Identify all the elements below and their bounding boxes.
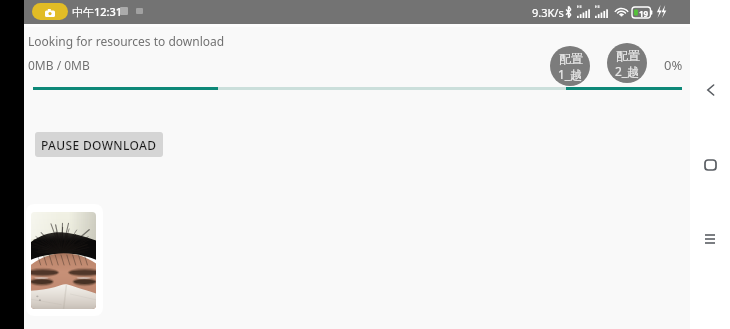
staticText: 配置 (616, 48, 640, 63)
button[interactable]: Back (690, 70, 730, 110)
button[interactable]: Downloaded photo thumbnail (26, 204, 103, 316)
staticText: 配置 (559, 51, 583, 66)
staticText: 19 (639, 8, 649, 19)
button[interactable]: Home (690, 144, 730, 185)
staticText: 1_越 (558, 66, 583, 82)
button[interactable]: Recent apps (690, 218, 730, 259)
staticText: PAUSE DOWNLOAD (41, 137, 157, 153)
staticText: 中午12:31 (72, 4, 123, 19)
staticText: 0MB / 0MB (28, 57, 90, 73)
button[interactable]: 配置 (607, 43, 647, 83)
staticText: 2_越 (615, 63, 640, 79)
staticText: Looking for resources to download (28, 33, 225, 49)
staticText: 9.3K/s (532, 5, 564, 20)
button[interactable]: 配置 (550, 46, 590, 86)
staticText: 0% (664, 56, 683, 74)
button[interactable]: PAUSE DOWNLOAD (35, 132, 163, 157)
